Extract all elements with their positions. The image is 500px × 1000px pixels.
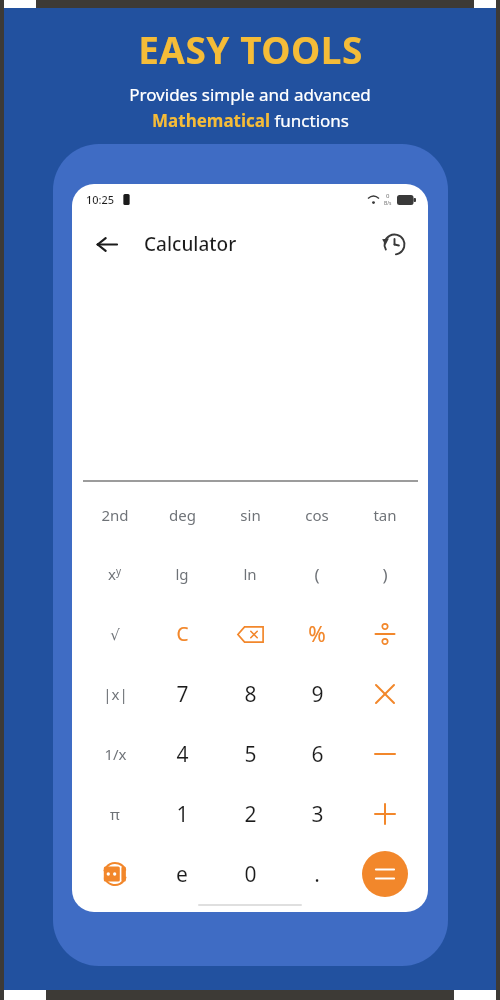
button[interactable]: cos (286, 488, 348, 542)
staticText: EASY TOOLS (138, 24, 363, 74)
button[interactable]: sin (219, 488, 281, 542)
staticText: 7 (176, 680, 189, 709)
staticText: B/s (384, 200, 392, 207)
button[interactable]: xy (84, 547, 146, 601)
button[interactable]: 4 (151, 727, 213, 781)
staticText: 2 (244, 800, 257, 829)
staticText: √ (110, 626, 120, 643)
button[interactable]: tan (354, 488, 416, 542)
staticText: 1/x (104, 744, 127, 764)
button[interactable]: History (376, 226, 412, 262)
staticText: sin (240, 505, 261, 525)
button[interactable]: 2nd (84, 488, 146, 542)
staticText: % (308, 620, 326, 649)
staticText: 8 (244, 680, 257, 709)
button[interactable]: C (151, 607, 213, 661)
button[interactable]: lg (151, 547, 213, 601)
button[interactable]: Divide (354, 607, 416, 661)
staticText: e (176, 860, 188, 889)
button[interactable]: 7 (151, 667, 213, 721)
button[interactable]: ) (354, 547, 416, 601)
staticText: xy (108, 564, 122, 584)
staticText: 1 (176, 800, 189, 829)
button[interactable]: Add (354, 787, 416, 841)
staticText: 5 (244, 740, 257, 769)
staticText: C (176, 621, 189, 647)
button[interactable]: % (286, 607, 348, 661)
staticText: ( (314, 563, 320, 586)
button[interactable]: 1 (151, 787, 213, 841)
button[interactable]: Multiply (354, 667, 416, 721)
staticText: ln (243, 564, 257, 584)
staticText: 4 (176, 740, 189, 769)
staticText: tan (373, 505, 397, 525)
staticText: 0 (386, 192, 390, 200)
button[interactable]: Unit converter (84, 847, 146, 901)
staticText: cos (305, 505, 329, 525)
staticText: π (110, 804, 120, 824)
button[interactable]: 9 (286, 667, 348, 721)
button[interactable]: 5 (219, 727, 281, 781)
staticText: 10:25 (86, 192, 115, 207)
staticText: 2nd (101, 505, 129, 525)
button[interactable]: 0 (219, 847, 281, 901)
staticText: . (314, 860, 320, 889)
staticText: 9 (311, 680, 324, 709)
staticText: 0 (244, 860, 257, 889)
staticText: lg (175, 564, 189, 584)
button[interactable]: 3 (286, 787, 348, 841)
staticText: 6 (311, 740, 324, 769)
button[interactable]: 2 (219, 787, 281, 841)
button[interactable]: 6 (286, 727, 348, 781)
button[interactable]: Backspace (219, 607, 281, 661)
button[interactable]: ln (219, 547, 281, 601)
staticText: deg (169, 505, 196, 525)
staticText: |x| (103, 684, 128, 704)
button[interactable]: 8 (219, 667, 281, 721)
button[interactable]: √ (84, 607, 146, 661)
button[interactable]: ( (286, 547, 348, 601)
staticText: Mathematical functions (152, 109, 349, 132)
button[interactable]: e (151, 847, 213, 901)
button[interactable]: deg (151, 488, 213, 542)
button[interactable]: |x| (84, 667, 146, 721)
staticText: ) (382, 563, 388, 586)
button[interactable]: π (84, 787, 146, 841)
staticText: Calculator (144, 231, 237, 257)
staticText: Provides simple and advanced (129, 83, 371, 106)
button[interactable]: Back (88, 226, 124, 262)
staticText: 3 (311, 800, 324, 829)
button[interactable]: Subtract (354, 727, 416, 781)
button[interactable]: Equals (362, 851, 408, 897)
button[interactable]: 1/x (84, 727, 146, 781)
button[interactable]: . (286, 847, 348, 901)
